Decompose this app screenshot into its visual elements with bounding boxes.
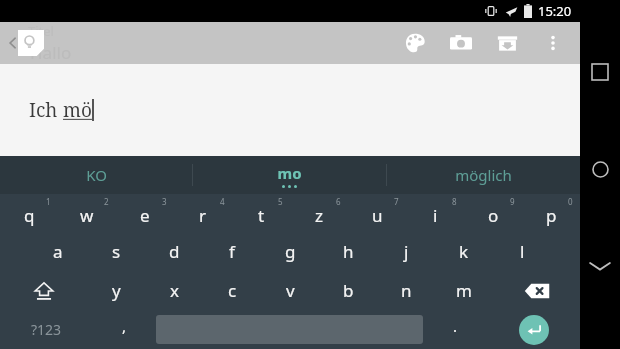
staticText: z (315, 204, 323, 227)
staticText: . (453, 316, 458, 336)
button[interactable]: KO (0, 156, 192, 194)
button[interactable]: , (92, 310, 156, 349)
staticText: j (404, 240, 409, 263)
button[interactable]: g (261, 232, 319, 271)
button[interactable]: c (203, 271, 261, 310)
button[interactable]: ?123 (0, 310, 92, 349)
button[interactable]: Archive (484, 22, 530, 64)
staticText: a (53, 240, 63, 263)
button[interactable]: a (29, 232, 87, 271)
staticText: 15:20 (538, 2, 572, 20)
staticText: 7 (394, 196, 399, 207)
staticText: i (433, 204, 438, 227)
staticText: k (459, 240, 469, 263)
staticText: q (24, 204, 35, 227)
staticText: KO (86, 165, 107, 185)
button[interactable]: l (493, 232, 551, 271)
button[interactable]: k (435, 232, 493, 271)
staticText: p (546, 204, 557, 227)
staticText: 5 (278, 196, 283, 207)
button[interactable]: 0 (522, 194, 580, 232)
staticText: 2 (104, 196, 109, 207)
staticText: , (122, 316, 127, 336)
staticText: f (229, 240, 235, 263)
staticText: 8 (452, 196, 457, 207)
staticText: möglich (455, 165, 512, 185)
staticText: r (199, 204, 207, 227)
button[interactable]: x (145, 271, 203, 310)
button[interactable]: Ich (0, 64, 580, 156)
staticText: d (169, 240, 180, 263)
staticText: mo (277, 163, 302, 183)
staticText: h (343, 240, 354, 263)
staticText: w (80, 204, 94, 227)
staticText: e (140, 204, 150, 227)
button[interactable]: 5 (232, 194, 290, 232)
button[interactable]: 3 (116, 194, 174, 232)
button[interactable]: Color palette (392, 22, 438, 64)
staticText: y (112, 279, 121, 302)
staticText: l (520, 240, 525, 263)
staticText: mö (63, 97, 92, 123)
button[interactable]: möglich (387, 156, 580, 194)
button[interactable]: 4 (174, 194, 232, 232)
staticText: s (112, 240, 121, 263)
staticText: 1 (46, 196, 51, 207)
staticText: b (343, 279, 354, 302)
button[interactable]: Enter (487, 310, 580, 349)
button[interactable]: s (87, 232, 145, 271)
staticText: v (286, 279, 295, 302)
staticText: ?123 (31, 320, 62, 339)
staticText: 9 (510, 196, 515, 207)
button[interactable]: More options (530, 22, 576, 64)
staticText: n (401, 279, 412, 302)
button[interactable]: Home (580, 149, 620, 189)
staticText: 3 (162, 196, 167, 207)
button[interactable]: 8 (406, 194, 464, 232)
staticText: x (170, 279, 179, 302)
button[interactable]: 2 (58, 194, 116, 232)
button[interactable]: Backspace (493, 271, 580, 310)
staticText: o (488, 204, 499, 227)
button[interactable]: y (87, 271, 145, 310)
button[interactable]: 7 (348, 194, 406, 232)
staticText: 4 (220, 196, 225, 207)
button[interactable]: 9 (464, 194, 522, 232)
staticText: t (258, 204, 265, 227)
button[interactable]: Shift (0, 271, 87, 310)
button[interactable]: d (145, 232, 203, 271)
staticText: g (285, 240, 296, 263)
staticText: m (456, 279, 472, 302)
button[interactable]: 1 (0, 194, 58, 232)
staticText: Ich (29, 97, 63, 123)
button[interactable]: b (319, 271, 377, 310)
button[interactable]: Back (2, 32, 24, 54)
button[interactable]: 6 (290, 194, 348, 232)
staticText: 6 (336, 196, 341, 207)
staticText: u (372, 204, 383, 227)
button[interactable]: Camera (438, 22, 484, 64)
button[interactable]: Recents (580, 52, 620, 92)
button[interactable]: f (203, 232, 261, 271)
button[interactable]: mo (193, 156, 386, 194)
button[interactable]: Hide keyboard (580, 246, 620, 286)
staticText: Titel (28, 22, 54, 40)
button[interactable]: j (377, 232, 435, 271)
button[interactable]: . (423, 310, 487, 349)
staticText: Hallo (30, 41, 72, 64)
button[interactable]: v (261, 271, 319, 310)
button[interactable]: n (377, 271, 435, 310)
button[interactable]: h (319, 232, 377, 271)
button[interactable]: m (435, 271, 493, 310)
staticText: c (228, 279, 237, 302)
staticText: 0 (568, 196, 573, 207)
